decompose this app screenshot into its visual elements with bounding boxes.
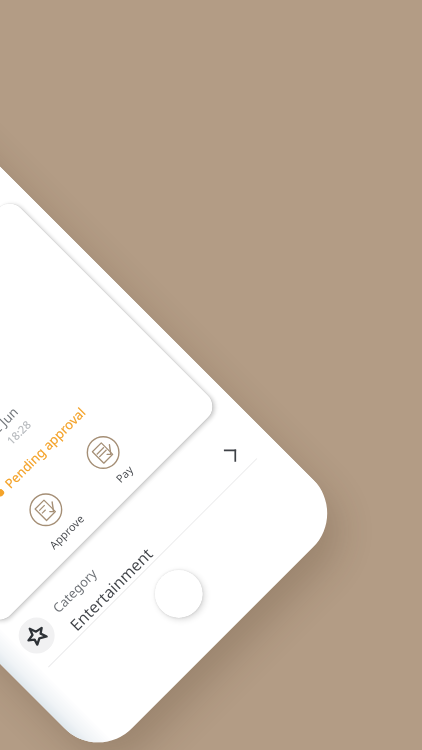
button[interactable]: Spotify Premium bbox=[0, 197, 219, 626]
button[interactable]: Favourite bbox=[11, 610, 62, 661]
other: Open category bbox=[225, 442, 242, 459]
staticText: 18:28 bbox=[3, 417, 34, 448]
button[interactable]: Pay bbox=[68, 418, 152, 502]
button[interactable]: Category bbox=[49, 527, 158, 636]
staticText: Category bbox=[49, 564, 101, 616]
button[interactable]: Pending approval bbox=[0, 403, 90, 501]
staticText: Pending approval bbox=[1, 403, 90, 492]
staticText: Entertainment bbox=[65, 543, 158, 636]
staticText: Pay bbox=[112, 462, 136, 486]
staticText: Approve bbox=[46, 510, 88, 552]
staticText: 12 Jun bbox=[0, 403, 22, 443]
button[interactable]: Approve bbox=[11, 476, 95, 559]
button[interactable]: Add bbox=[145, 560, 213, 628]
